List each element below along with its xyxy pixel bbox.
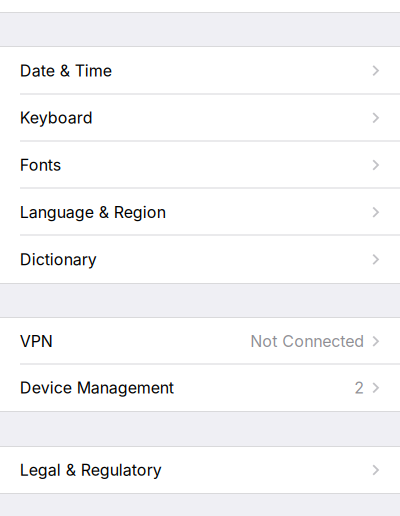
staticText: Fonts	[20, 155, 61, 175]
staticText: VPN	[20, 332, 53, 351]
staticText: Legal & Regulatory	[20, 460, 162, 480]
staticText: Device Management	[20, 378, 174, 397]
staticText: Dictionary	[20, 250, 97, 269]
button[interactable]: Device Management	[0, 364, 400, 411]
button[interactable]: Keyboard	[0, 94, 400, 141]
staticText: Date & Time	[20, 61, 112, 80]
button[interactable]: Fonts	[0, 141, 400, 189]
staticText: Keyboard	[20, 108, 93, 127]
button[interactable]: Dictionary	[0, 236, 400, 283]
staticText: Language & Region	[20, 202, 166, 222]
staticText: Not Connected	[250, 332, 364, 351]
button[interactable]: Date & Time	[0, 47, 400, 94]
button[interactable]: Language & Region	[0, 189, 400, 236]
button[interactable]: Legal & Regulatory	[0, 447, 400, 493]
button[interactable]: VPN	[0, 318, 400, 364]
staticText: 2	[354, 378, 364, 397]
